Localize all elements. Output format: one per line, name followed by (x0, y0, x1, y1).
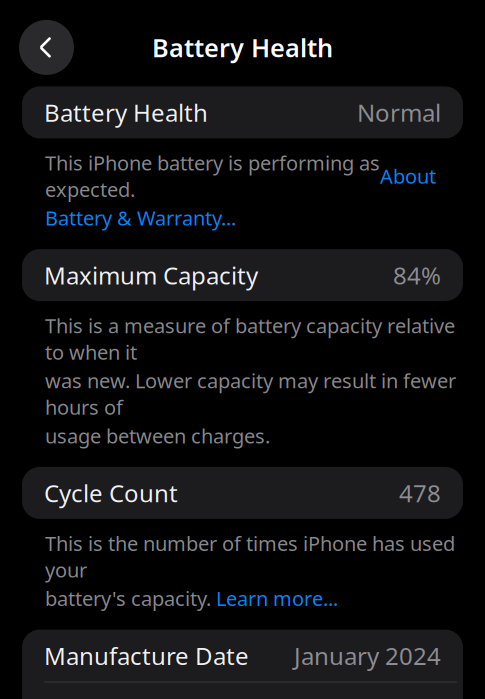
staticText: Battery Health (44, 96, 208, 128)
button[interactable]: Manufacture Date (22, 630, 463, 682)
staticText: Manufacture Date (44, 640, 249, 671)
button[interactable]: Back (19, 20, 74, 75)
staticText: January 2024 (294, 640, 441, 671)
button[interactable]: Cycle Count (0, 467, 485, 519)
button[interactable]: Maximum Capacity (0, 249, 485, 301)
staticText: Maximum Capacity (44, 259, 258, 291)
staticText: was new. Lower capacity may result in fe… (45, 367, 456, 420)
staticText: This is a measure of battery capacity re… (45, 312, 455, 365)
staticText: 84% (393, 259, 441, 291)
staticText: usage between charges. (45, 422, 270, 449)
button[interactable]: Battery Health (0, 86, 485, 138)
staticText: Battery & Warranty... (45, 204, 236, 231)
staticText: battery's capacity. (45, 585, 216, 612)
staticText: This iPhone battery is performing as exp… (45, 149, 380, 202)
staticText: Learn more... (216, 585, 338, 612)
staticText: This is the number of times iPhone has u… (45, 530, 455, 583)
staticText: Cycle Count (44, 477, 178, 509)
staticText: 478 (399, 477, 441, 509)
staticText: Battery Health (152, 31, 333, 64)
staticText: Normal (357, 96, 441, 128)
staticText: About (380, 163, 436, 189)
